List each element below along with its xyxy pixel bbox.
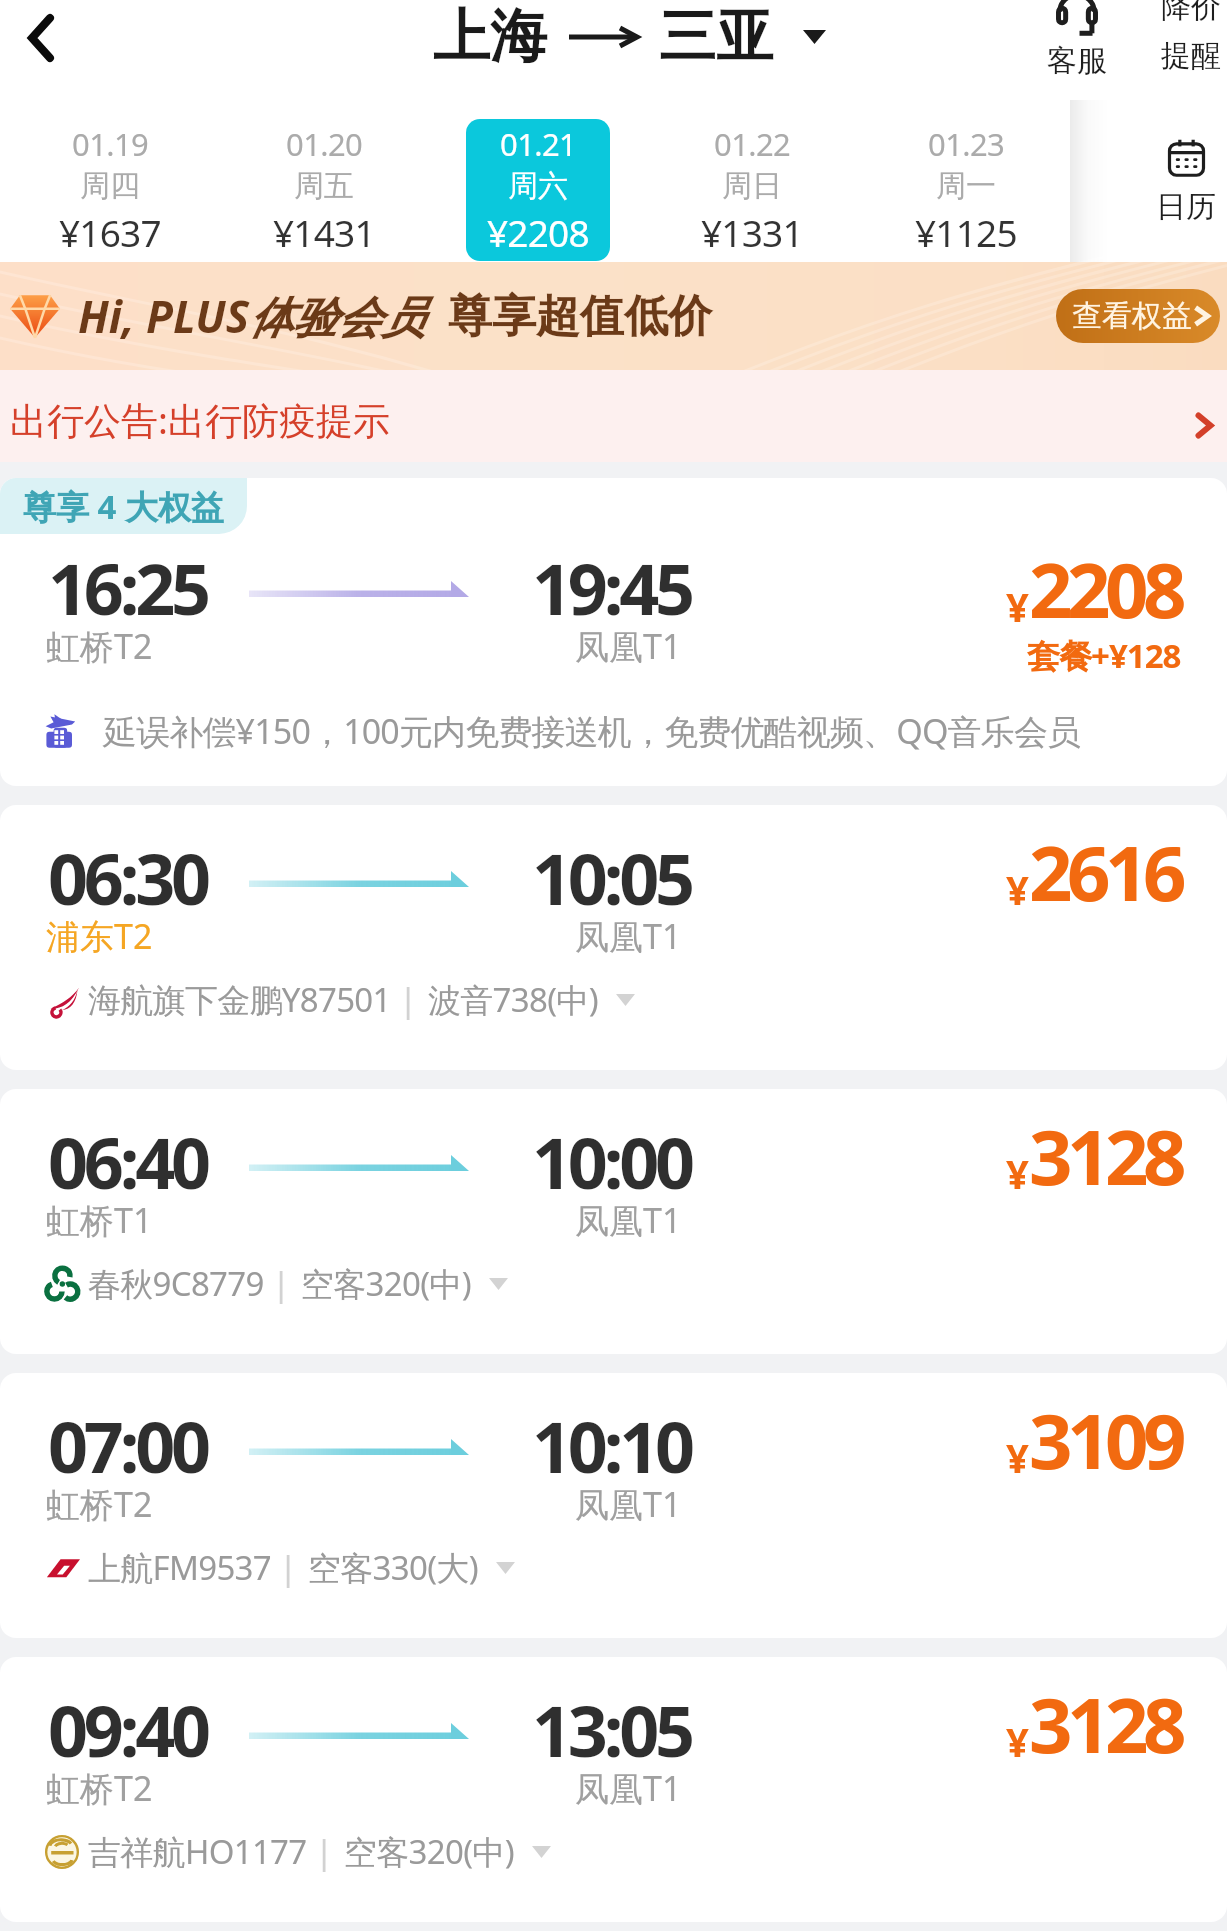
button[interactable]: 01.22 xyxy=(680,119,824,261)
staticText: 01.20 xyxy=(286,123,363,165)
staticText: 2616 xyxy=(1029,820,1181,924)
staticText: ¥ xyxy=(1006,579,1029,633)
staticText: 凤凰T1 xyxy=(575,913,682,959)
staticText: 提醒 xyxy=(1161,37,1221,75)
button[interactable]: 查看权益 xyxy=(1072,289,1214,343)
staticText: 尊享超值低价 xyxy=(448,289,712,344)
button[interactable]: 出行公告:出行防疫提示 xyxy=(0,370,1227,462)
staticText: 凤凰T1 xyxy=(575,623,682,669)
staticText: 查看权益 xyxy=(1072,297,1192,335)
staticText: 浦东T2 xyxy=(46,913,153,959)
staticText: 01.21 xyxy=(500,123,577,165)
button[interactable]: 09:40 xyxy=(0,1657,1227,1922)
staticText: 虹桥T2 xyxy=(46,1481,153,1527)
staticText: 16:25 xyxy=(48,540,207,635)
staticText: 空客330(大) xyxy=(308,1545,478,1590)
staticText: 套餐+¥128 xyxy=(1027,633,1181,678)
staticText: 10:10 xyxy=(532,1398,691,1493)
staticText: 客服 xyxy=(1047,42,1107,80)
staticText: 07:00 xyxy=(48,1398,207,1493)
staticText: 波音738(中) xyxy=(428,977,598,1022)
staticText: 春秋9C8779 xyxy=(88,1261,264,1306)
staticText: 虹桥T2 xyxy=(46,1765,153,1811)
staticText: 三亚 xyxy=(659,1,773,73)
button[interactable]: Hi, PLUS体验会员 xyxy=(0,262,1227,370)
staticText: 日历 xyxy=(1156,188,1216,226)
button[interactable]: 01.19 xyxy=(38,119,182,261)
button[interactable]: 06:30 xyxy=(0,805,1227,1070)
staticText: 周日 xyxy=(722,167,782,205)
staticText: ¥1637 xyxy=(59,207,161,257)
staticText: 上航FM9537 xyxy=(88,1545,271,1590)
staticText: 01.23 xyxy=(928,123,1005,165)
staticText: 尊享 4 大权益 xyxy=(23,484,225,529)
staticText: 吉祥航HO1177 xyxy=(88,1829,307,1874)
staticText: 空客320(中) xyxy=(301,1261,471,1306)
button[interactable]: 日历 xyxy=(1070,100,1227,262)
staticText: 06:30 xyxy=(48,830,207,925)
button[interactable]: Back xyxy=(0,0,82,76)
staticText: 06:40 xyxy=(48,1114,207,1209)
staticText: 出行公告:出行防疫提示 xyxy=(10,394,390,445)
staticText: ¥ xyxy=(1006,1430,1029,1484)
button[interactable]: 客服 xyxy=(1018,0,1136,88)
staticText: 凤凰T1 xyxy=(575,1765,682,1811)
staticText: 3128 xyxy=(1029,1104,1181,1208)
button[interactable]: 尊享 4 大权益 xyxy=(0,478,1227,786)
staticText: 19:45 xyxy=(532,540,691,635)
staticText: 凤凰T1 xyxy=(575,1197,682,1243)
staticText: 3109 xyxy=(1029,1388,1181,1492)
staticText: 周五 xyxy=(294,167,354,205)
staticText: | xyxy=(315,1829,334,1874)
staticText: 2208 xyxy=(1029,537,1181,641)
staticText: | xyxy=(399,977,418,1022)
staticText: ¥2208 xyxy=(487,207,589,257)
staticText: 01.22 xyxy=(714,123,791,165)
staticText: 降价 xyxy=(1161,0,1221,26)
staticText: ¥ xyxy=(1006,1146,1029,1200)
staticText: 虹桥T1 xyxy=(46,1197,153,1243)
staticText: 10:05 xyxy=(532,830,691,925)
button[interactable]: 降价 xyxy=(1136,0,1227,87)
staticText: 09:40 xyxy=(48,1682,207,1777)
staticText: 海航旗下金鹏Y87501 xyxy=(88,977,391,1022)
staticText: ¥ xyxy=(1006,1714,1029,1768)
staticText: 10:00 xyxy=(532,1114,691,1209)
staticText: ¥1431 xyxy=(273,207,375,257)
staticText: | xyxy=(272,1261,291,1306)
staticText: 空客320(中) xyxy=(344,1829,514,1874)
button[interactable]: 07:00 xyxy=(0,1373,1227,1638)
staticText: ¥ xyxy=(1006,862,1029,916)
staticText: 虹桥T2 xyxy=(46,623,153,669)
staticText: 3128 xyxy=(1029,1672,1181,1776)
staticText: ¥1331 xyxy=(701,207,803,257)
button[interactable]: 06:40 xyxy=(0,1089,1227,1354)
staticText: Hi, PLUS体验会员 xyxy=(78,286,426,346)
button[interactable]: 01.23 xyxy=(894,119,1038,261)
staticText: | xyxy=(279,1545,298,1590)
staticText: 01.19 xyxy=(72,123,149,165)
button[interactable]: 01.21 xyxy=(466,119,610,261)
staticText: 13:05 xyxy=(532,1682,691,1777)
staticText: ¥1125 xyxy=(915,207,1017,257)
staticText: 周一 xyxy=(936,167,996,205)
staticText: 周四 xyxy=(80,167,140,205)
staticText: 上海 xyxy=(433,1,547,73)
staticText: 凤凰T1 xyxy=(575,1481,682,1527)
staticText: 周六 xyxy=(508,167,568,205)
staticText: 延误补偿¥150，100元内免费接送机，免费优酷视频、QQ音乐会员 xyxy=(103,708,1081,754)
button[interactable]: 01.20 xyxy=(252,119,396,261)
